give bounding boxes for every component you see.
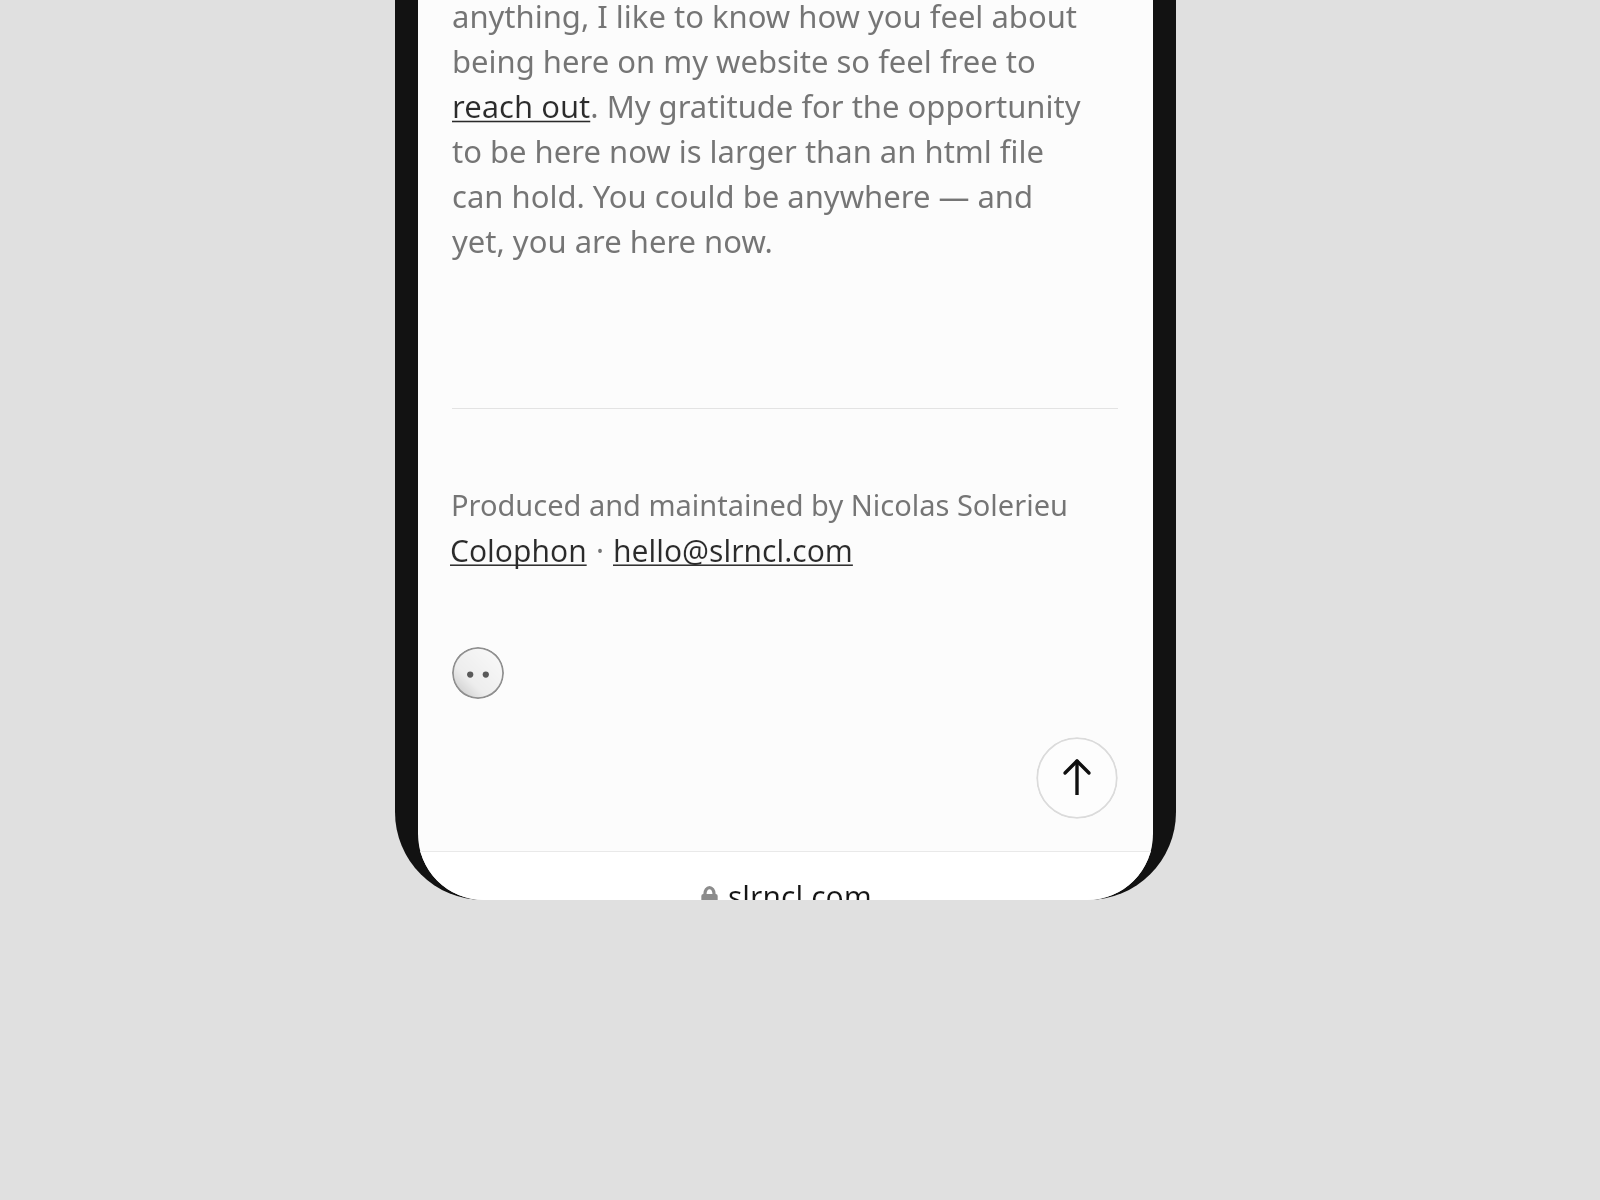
staticText: hello@slrncl.com (613, 530, 853, 571)
staticText: anything, I like to know how you feel ab… (452, 0, 1090, 262)
button[interactable]: hello@slrncl.com (613, 530, 853, 571)
button[interactable]: Colophon (450, 530, 587, 571)
staticText: Colophon (450, 530, 587, 571)
button[interactable]: Profile avatar (452, 647, 504, 699)
staticText: Produced and maintained by Nicolas Soler… (451, 485, 1068, 524)
staticText: slrncl.com (728, 876, 872, 900)
staticText: · (596, 530, 605, 571)
button[interactable]: Scroll to top (1036, 737, 1118, 819)
button[interactable]: slrncl.com (700, 876, 872, 900)
